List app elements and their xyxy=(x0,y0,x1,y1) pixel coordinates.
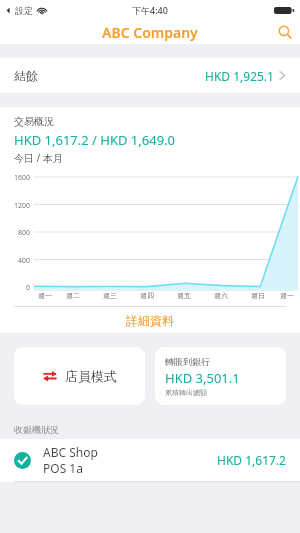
staticText: 1200 xyxy=(14,201,31,209)
staticText: 週一 xyxy=(280,291,294,300)
button[interactable]: 店員模式 xyxy=(14,347,145,405)
button[interactable]: 結餘 xyxy=(0,58,300,93)
staticText: 下午4:40 xyxy=(132,4,168,16)
staticText: 轉賬到銀行 xyxy=(165,356,210,367)
staticText: 週日 xyxy=(251,291,265,300)
staticText: 結餘 xyxy=(14,68,38,83)
staticText: 週一 xyxy=(38,291,52,300)
staticText: ABC Company xyxy=(102,23,198,42)
button[interactable]: 詳細資料 xyxy=(0,307,300,333)
staticText: 400 xyxy=(18,256,31,264)
staticText: 店員模式 xyxy=(65,368,117,384)
staticText: 今日 / 本月 xyxy=(14,151,63,165)
button[interactable]: ABC Shop xyxy=(0,439,300,482)
staticText: 週三 xyxy=(103,291,117,300)
staticText: 設定 xyxy=(15,5,33,16)
staticText: 詳細資料 xyxy=(126,313,174,328)
staticText: 週六 xyxy=(214,291,228,300)
staticText: 800 xyxy=(18,228,31,236)
staticText: 累積轉出總額 xyxy=(165,388,207,397)
staticText: 交易概況 xyxy=(14,115,54,128)
staticText: POS 1a xyxy=(43,460,83,476)
staticText: 週五 xyxy=(177,291,191,300)
staticText: HKD 1,617.2 xyxy=(217,452,286,468)
staticText: 收銀機狀況 xyxy=(14,424,59,435)
staticText: 0 xyxy=(26,283,31,291)
staticText: ABC Shop xyxy=(43,444,98,460)
staticText: HKD 3,501.1 xyxy=(165,369,240,387)
staticText: HKD 1,925.1 xyxy=(205,68,274,84)
staticText: 週四 xyxy=(140,291,154,300)
button[interactable]: Search xyxy=(270,20,300,44)
staticText: 1600 xyxy=(14,173,31,181)
staticText: 週二 xyxy=(66,291,80,300)
staticText: HKD 1,617.2 / HKD 1,649.0 xyxy=(14,131,175,149)
button[interactable]: 轉賬到銀行 xyxy=(155,347,286,405)
